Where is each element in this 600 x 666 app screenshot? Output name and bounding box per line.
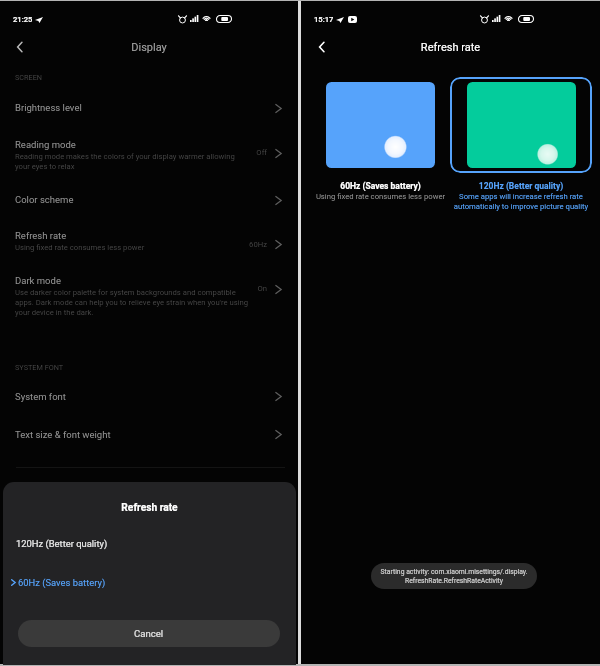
staticText: Reading mode bbox=[15, 139, 76, 150]
staticText: 60Hz (Saves battery) bbox=[315, 181, 446, 191]
staticText: Brightness level bbox=[15, 102, 82, 113]
staticText: Reading mode makes the colors of your di… bbox=[15, 152, 251, 170]
button[interactable]: Back bbox=[306, 31, 338, 63]
button[interactable]: Brightness level bbox=[0, 87, 298, 123]
button[interactable]: Color scheme bbox=[0, 179, 298, 215]
staticText: Use darker color palette for system back… bbox=[15, 288, 251, 316]
staticText: 15:17 bbox=[314, 15, 334, 24]
staticText: Some apps will increase refresh rate aut… bbox=[445, 192, 597, 211]
staticText: Using fixed rate consumes less power bbox=[305, 192, 456, 201]
staticText: SYSTEM FONT bbox=[15, 363, 64, 372]
staticText: Color scheme bbox=[15, 194, 74, 205]
staticText: Text size & font weight bbox=[15, 429, 111, 440]
staticText: Refresh rate bbox=[301, 41, 600, 54]
staticText: Off bbox=[207, 148, 267, 157]
staticText: 120Hz (Better quality) bbox=[450, 181, 592, 191]
button[interactable]: 60Hz (Saves battery) bbox=[3, 569, 296, 599]
button[interactable] bbox=[450, 77, 592, 173]
staticText: Starting activity: com.xiaomi.misettings… bbox=[380, 568, 528, 584]
button[interactable]: Text size & font weight bbox=[0, 414, 298, 450]
button[interactable] bbox=[326, 82, 435, 168]
staticText: Cancel bbox=[134, 628, 164, 639]
staticText: On bbox=[207, 284, 267, 293]
staticText: 120Hz (Better quality) bbox=[16, 538, 108, 549]
staticText: Using fixed rate consumes less power bbox=[15, 243, 251, 252]
staticText: Display bbox=[0, 41, 298, 54]
button[interactable]: Dark mode bbox=[0, 265, 298, 317]
staticText: SCREEN bbox=[15, 73, 43, 82]
staticText: Refresh rate bbox=[15, 230, 67, 241]
button[interactable]: System font bbox=[0, 376, 298, 412]
staticText: Refresh rate bbox=[3, 502, 296, 514]
staticText: 60Hz (Saves battery) bbox=[18, 577, 106, 588]
staticText: 21:25 bbox=[13, 15, 33, 24]
staticText: System font bbox=[15, 391, 66, 402]
button[interactable]: Reading mode bbox=[0, 129, 298, 171]
button[interactable]: Refresh rate bbox=[0, 221, 298, 257]
staticText: 60Hz bbox=[207, 240, 267, 249]
button[interactable]: Cancel bbox=[18, 620, 280, 647]
button[interactable]: Back bbox=[4, 31, 36, 63]
button[interactable]: 120Hz (Better quality) bbox=[3, 530, 296, 560]
staticText: Dark mode bbox=[15, 275, 61, 286]
